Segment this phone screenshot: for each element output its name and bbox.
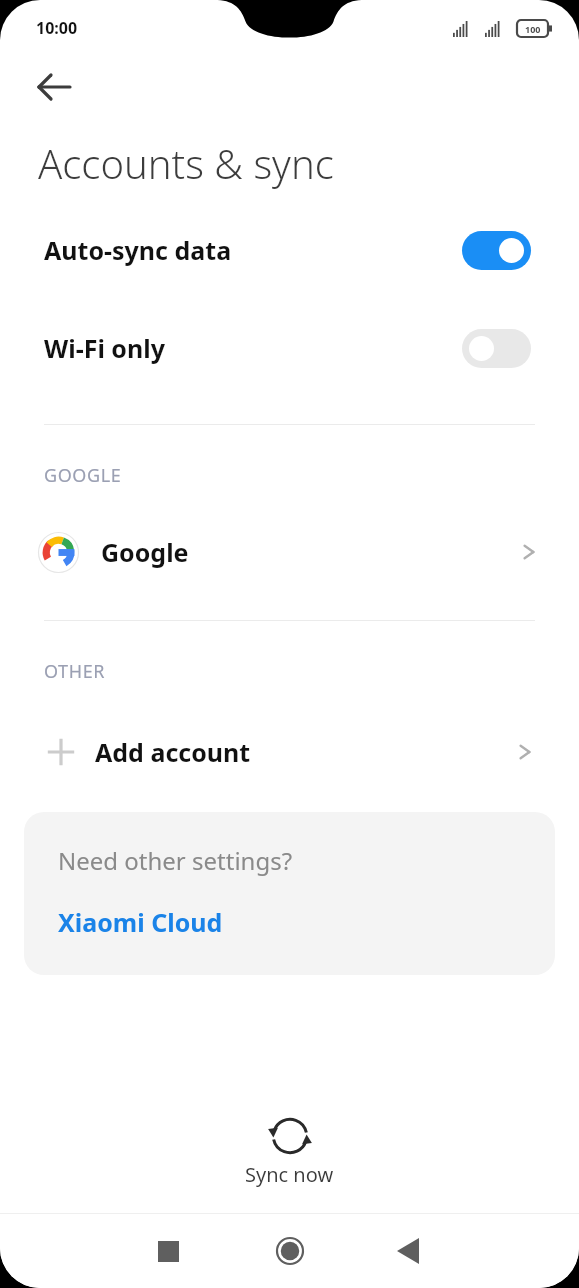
button[interactable]: Google: [0, 524, 579, 580]
button[interactable]: Recent apps: [140, 1223, 196, 1279]
staticText: Sync now: [245, 1161, 334, 1188]
staticText: Xiaomi Cloud: [58, 905, 223, 939]
staticText: GOOGLE: [44, 463, 122, 488]
button[interactable]: Add account: [0, 724, 579, 780]
staticText: Auto-sync data: [44, 233, 462, 267]
staticText: 100: [525, 23, 541, 35]
button[interactable]: Wi-Fi only: [0, 322, 579, 374]
button[interactable]: Home: [262, 1223, 318, 1279]
button[interactable]: Auto-sync data: [0, 224, 579, 276]
staticText: Add account: [95, 735, 515, 769]
staticText: Wi-Fi only: [44, 331, 462, 365]
button[interactable]: Sync now: [205, 1109, 374, 1196]
staticText: Accounts & sync: [38, 136, 334, 190]
button[interactable]: Need other settings?: [24, 812, 555, 975]
staticText: 10:00: [36, 17, 78, 39]
button[interactable]: Back: [380, 1223, 436, 1279]
staticText: Need other settings?: [58, 844, 293, 877]
staticText: OTHER: [44, 659, 106, 684]
staticText: Google: [101, 535, 519, 569]
button[interactable]: Back: [26, 59, 82, 115]
